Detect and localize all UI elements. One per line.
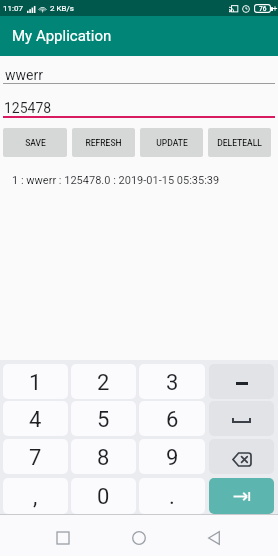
- button[interactable]: 8: [71, 439, 136, 474]
- staticText: 6: [166, 407, 179, 433]
- button[interactable]: 2: [71, 364, 136, 399]
- staticText: 2: [97, 370, 110, 396]
- staticText: 9: [166, 445, 179, 471]
- button[interactable]: 5: [71, 401, 136, 436]
- button[interactable]: 0: [71, 478, 136, 514]
- button[interactable]: SAVE: [3, 128, 67, 157]
- staticText: REFRESH: [85, 138, 122, 148]
- button[interactable]: REFRESH: [72, 128, 135, 157]
- button[interactable]: Home: [119, 518, 159, 556]
- staticText: ,: [33, 484, 38, 510]
- staticText: 0: [97, 484, 110, 510]
- staticText: SAVE: [25, 138, 46, 148]
- staticText: 11:07: [3, 4, 23, 13]
- button[interactable]: UPDATE: [140, 128, 203, 157]
- staticText: 5: [97, 407, 110, 433]
- button[interactable]: 6: [139, 401, 205, 436]
- button[interactable]: 7: [3, 439, 68, 474]
- button[interactable]: Recents: [43, 518, 83, 556]
- button[interactable]: Back: [194, 518, 234, 556]
- button[interactable]: DELETEALL: [208, 128, 271, 157]
- staticText: 7: [29, 445, 42, 471]
- button[interactable]: .: [139, 478, 205, 514]
- staticText: wwerr: [5, 67, 43, 83]
- staticText: 125478: [4, 100, 52, 116]
- staticText: 2 KB/s: [50, 4, 74, 13]
- button[interactable]: 4: [3, 401, 68, 436]
- button[interactable]: Backspace: [209, 439, 274, 474]
- button[interactable]: 1: [3, 364, 68, 399]
- button[interactable]: Minus: [209, 364, 274, 399]
- staticText: DELETEALL: [217, 138, 262, 148]
- button[interactable]: 3: [139, 364, 205, 399]
- button[interactable]: 9: [139, 439, 205, 474]
- staticText: 8: [97, 445, 110, 471]
- staticText: 3: [166, 370, 179, 396]
- button[interactable]: Enter: [209, 478, 274, 514]
- staticText: My Application: [12, 27, 112, 45]
- staticText: .: [169, 484, 175, 510]
- staticText: 4: [29, 407, 42, 433]
- staticText: 1 : wwerr : 125478.0 : 2019-01-15 05:35:…: [12, 174, 220, 187]
- staticText: 1: [29, 370, 42, 396]
- button[interactable]: Space: [209, 401, 274, 436]
- staticText: UPDATE: [156, 138, 188, 148]
- staticText: 76: [259, 5, 267, 13]
- button[interactable]: ,: [3, 478, 68, 514]
